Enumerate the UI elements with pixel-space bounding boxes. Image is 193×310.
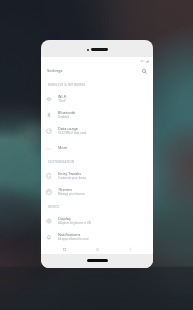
button[interactable]: Display [41, 213, 153, 229]
button[interactable]: Themes [41, 184, 153, 200]
staticText: DEVICE [48, 205, 60, 209]
staticText: Bluetooth [58, 110, 76, 115]
button[interactable]: Wi-Fi [41, 91, 153, 107]
staticText: More [58, 145, 68, 150]
staticText: 10.32 MB of data used [58, 131, 87, 135]
button[interactable]: Back [127, 246, 133, 252]
staticText: Manage your themes [58, 192, 85, 196]
staticText: Adaptive brightness is ON [58, 221, 91, 225]
staticText: Themes [58, 187, 72, 192]
staticText: Disabled [58, 115, 69, 119]
staticText: CUSTOMIZATION [48, 160, 75, 164]
staticText: WIRELESS & NETWORKS [48, 83, 86, 87]
staticText: "Devil" [58, 99, 67, 103]
button[interactable]: Data usage [41, 123, 153, 139]
button[interactable]: Notifications [41, 229, 153, 245]
button[interactable]: Home [94, 246, 100, 252]
button[interactable]: More [41, 139, 153, 155]
staticText: All apps allowed to send [58, 237, 89, 241]
staticText: Display [58, 216, 71, 221]
button[interactable]: Entry Tweaks [41, 168, 153, 184]
staticText: Settings [47, 68, 63, 74]
staticText: Entry Tweaks [58, 171, 82, 176]
button[interactable]: Search [139, 66, 149, 76]
button[interactable]: Bluetooth [41, 107, 153, 123]
staticText: Data usage [58, 126, 78, 131]
staticText: Wi-Fi [58, 94, 67, 99]
staticText: Notifications [58, 232, 81, 237]
staticText: Customize your device [58, 176, 87, 180]
button[interactable]: Recent apps [61, 246, 67, 252]
